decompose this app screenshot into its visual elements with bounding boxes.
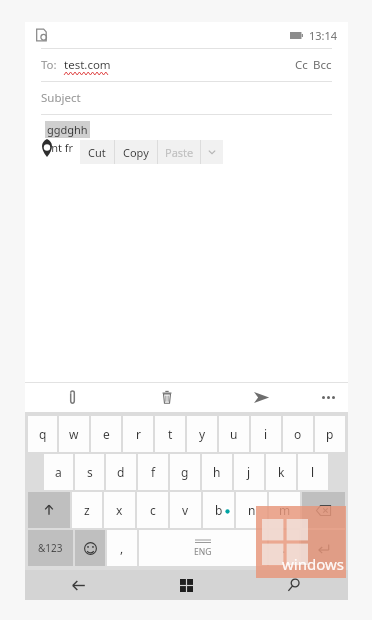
button[interactable]: ENG xyxy=(139,530,267,566)
button[interactable]: f xyxy=(138,454,168,490)
staticText: f xyxy=(151,464,156,480)
staticText: l xyxy=(311,464,315,480)
button[interactable]: Back xyxy=(25,570,132,600)
staticText: c xyxy=(150,502,156,518)
staticText: Bcc xyxy=(313,57,332,73)
staticText: m xyxy=(279,502,291,518)
button[interactable]: z xyxy=(72,492,102,528)
staticText: s xyxy=(87,464,93,480)
button[interactable]: k xyxy=(266,454,296,490)
staticText: b xyxy=(215,502,223,518)
button[interactable]: b xyxy=(203,492,234,528)
staticText: Paste xyxy=(165,145,194,160)
staticText: ENG xyxy=(194,546,212,558)
button[interactable]: More options xyxy=(201,140,223,164)
button[interactable]: Backspace xyxy=(302,492,345,528)
button[interactable]: y xyxy=(187,416,217,452)
button[interactable]: Start xyxy=(132,570,240,600)
staticText: Subject xyxy=(41,90,81,106)
button[interactable]: . xyxy=(269,530,299,566)
staticText: h xyxy=(213,464,221,480)
button[interactable]: Search xyxy=(240,570,348,600)
button[interactable]: m xyxy=(269,492,300,528)
button[interactable]: Bcc xyxy=(313,57,332,73)
button[interactable]: i xyxy=(251,416,281,452)
staticText: Copy xyxy=(123,145,149,160)
button[interactable]: v xyxy=(170,492,201,528)
button[interactable]: Cut xyxy=(80,140,114,164)
staticText: &123 xyxy=(38,541,63,555)
button[interactable]: j xyxy=(234,454,264,490)
button[interactable]: q xyxy=(28,416,57,452)
button[interactable]: t xyxy=(155,416,185,452)
staticText: r xyxy=(136,426,141,442)
button[interactable]: s xyxy=(75,454,104,490)
staticText: a xyxy=(55,464,62,480)
staticText: q xyxy=(39,426,47,442)
button[interactable]: u xyxy=(219,416,249,452)
staticText: To: xyxy=(41,57,57,73)
staticText: n xyxy=(248,502,256,518)
staticText: windows xyxy=(282,554,344,574)
staticText: y xyxy=(199,426,206,442)
button[interactable]: o xyxy=(283,416,313,452)
button[interactable]: Shift xyxy=(28,492,70,528)
staticText: u xyxy=(230,426,238,442)
staticText: e xyxy=(103,426,110,442)
button[interactable]: Subject xyxy=(25,82,348,114)
button[interactable]: Paste xyxy=(158,140,200,164)
button[interactable]: l xyxy=(298,454,328,490)
button[interactable]: r xyxy=(123,416,153,452)
staticText: 13:14 xyxy=(309,28,338,43)
button[interactable]: g xyxy=(170,454,200,490)
button[interactable]: e xyxy=(91,416,121,452)
button[interactable]: w xyxy=(59,416,89,452)
staticText: z xyxy=(84,502,90,518)
staticText: o xyxy=(294,426,302,442)
staticText: . xyxy=(282,540,286,556)
staticText: ggdghh xyxy=(47,122,88,137)
button[interactable]: d xyxy=(106,454,136,490)
staticText: i xyxy=(264,426,268,442)
staticText: v xyxy=(182,502,189,518)
button[interactable]: Attach xyxy=(25,382,120,412)
staticText: Cut xyxy=(88,145,106,160)
staticText: p xyxy=(326,426,334,442)
button[interactable]: n xyxy=(236,492,267,528)
button[interactable]: Emoji xyxy=(75,530,105,566)
staticText: , xyxy=(120,540,124,556)
button[interactable]: c xyxy=(137,492,168,528)
button[interactable]: , xyxy=(107,530,137,566)
staticText: test.com xyxy=(64,57,111,73)
staticText: t xyxy=(168,426,173,442)
button[interactable]: Delete xyxy=(120,382,214,412)
button[interactable]: &123 xyxy=(28,530,73,566)
button[interactable]: p xyxy=(315,416,345,452)
button[interactable]: To: xyxy=(25,49,348,81)
staticText: k xyxy=(278,464,285,480)
button[interactable]: x xyxy=(104,492,135,528)
button[interactable]: Cc xyxy=(295,57,308,73)
staticText: w xyxy=(69,426,79,442)
button[interactable]: a xyxy=(44,454,73,490)
button[interactable]: More xyxy=(308,382,348,412)
button[interactable]: Enter xyxy=(301,530,345,566)
staticText: x xyxy=(116,502,123,518)
button[interactable]: h xyxy=(202,454,232,490)
staticText: d xyxy=(117,464,125,480)
button[interactable]: Copy xyxy=(115,140,157,164)
staticText: ent fr xyxy=(45,140,74,155)
button[interactable]: Send xyxy=(214,382,308,412)
other: Selection handle xyxy=(40,139,54,157)
staticText: g xyxy=(181,464,189,480)
staticText: j xyxy=(247,464,251,480)
staticText: Cc xyxy=(295,57,308,73)
